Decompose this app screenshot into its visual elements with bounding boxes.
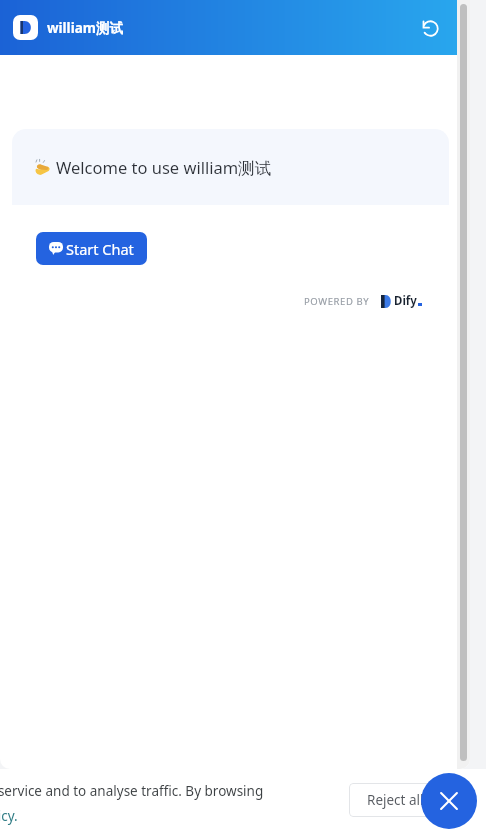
staticText: POWERED BY [304, 295, 370, 308]
staticText: Welcome to use william测试 [56, 156, 272, 179]
staticText: Reject all [367, 791, 424, 809]
staticText: william测试 [47, 19, 123, 37]
staticText: Start Chat [66, 239, 134, 259]
staticText: Dify [394, 293, 417, 309]
staticText: ver its service and to analyse traffic. … [0, 782, 264, 800]
button[interactable]: Reject all [349, 783, 441, 817]
button[interactable]: Start Chat [36, 232, 147, 265]
staticText: kie policy. [0, 807, 18, 825]
button[interactable]: Restart conversation [416, 14, 444, 42]
button[interactable]: Close chat [421, 773, 477, 829]
